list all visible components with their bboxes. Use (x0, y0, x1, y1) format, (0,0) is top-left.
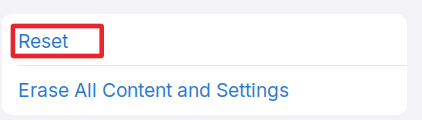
button[interactable]: Reset (2, 14, 407, 65)
button[interactable]: Erase All Content and Settings (2, 66, 407, 114)
staticText: Reset (18, 29, 68, 53)
staticText: Erase All Content and Settings (18, 78, 289, 102)
